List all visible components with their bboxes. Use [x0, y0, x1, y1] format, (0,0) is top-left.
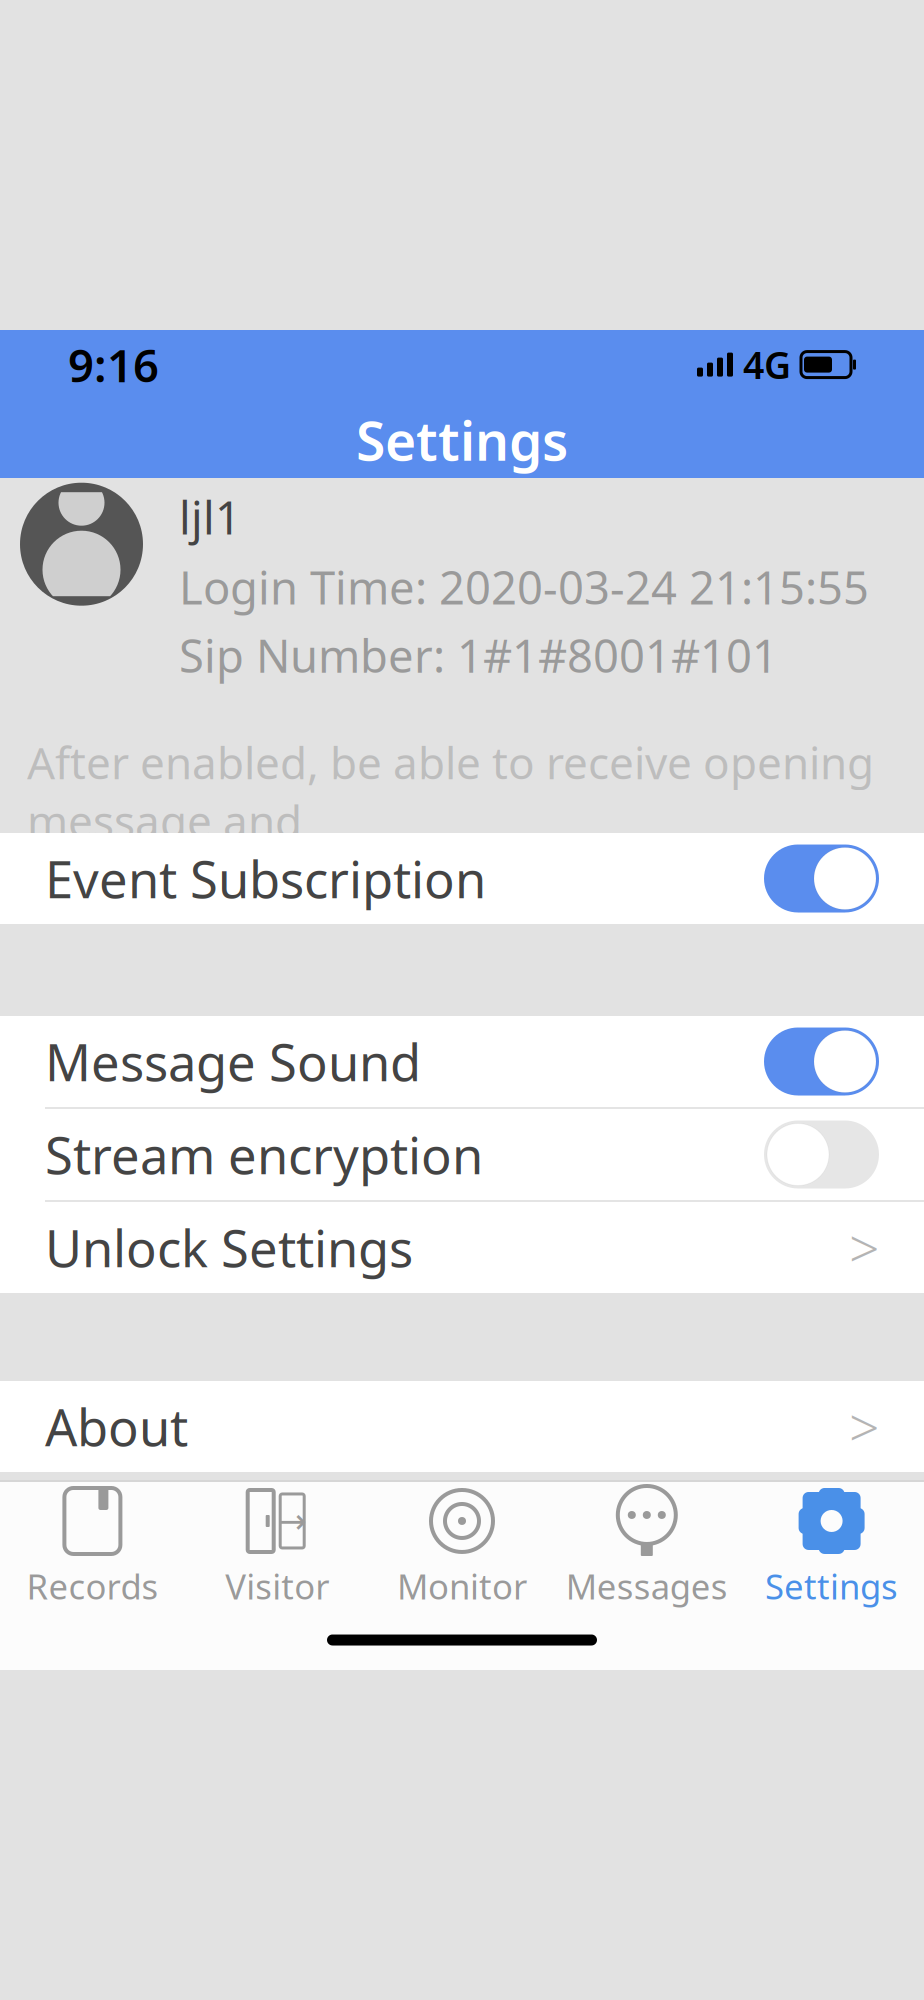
- staticText: Messages: [566, 1563, 728, 1609]
- staticText: About: [45, 1393, 188, 1460]
- staticText: Message Sound: [45, 1028, 421, 1095]
- staticText: 4G: [743, 340, 791, 389]
- button[interactable]: Event Subscription: [0, 833, 924, 924]
- button[interactable]: About: [0, 1381, 924, 1472]
- staticText: Login Time: 2020-03-24 21:15:55: [179, 557, 869, 617]
- staticText: Records: [26, 1563, 158, 1609]
- staticText: 9:16: [68, 334, 159, 395]
- staticText: Stream encryption: [45, 1121, 483, 1188]
- staticText: Monitor: [397, 1563, 527, 1609]
- staticText: After enabled, be able to receive openin…: [27, 733, 874, 850]
- button[interactable]: Settings: [739, 1473, 924, 1619]
- staticText: →: [278, 1501, 307, 1541]
- staticText: alarm message.: [27, 854, 355, 912]
- staticText: Visitor: [225, 1563, 329, 1609]
- staticText: Settings: [356, 405, 568, 475]
- staticText: Event Subscription: [45, 845, 486, 912]
- button[interactable]: Stream encryption: [0, 1109, 924, 1200]
- staticText: >: [849, 1391, 879, 1462]
- button[interactable]: Message Sound: [0, 1016, 924, 1107]
- staticText: Sip Number: 1#1#8001#101: [179, 625, 778, 685]
- staticText: ljl1: [179, 487, 241, 547]
- button[interactable]: Monitor: [370, 1473, 554, 1619]
- staticText: Unlock Settings: [45, 1214, 413, 1281]
- button[interactable]: Messages: [554, 1473, 739, 1619]
- staticText: >: [849, 1212, 879, 1283]
- staticText: Settings: [765, 1563, 898, 1609]
- button[interactable]: →: [185, 1473, 370, 1619]
- button[interactable]: Unlock Settings: [0, 1202, 924, 1293]
- button[interactable]: Records: [0, 1473, 185, 1619]
